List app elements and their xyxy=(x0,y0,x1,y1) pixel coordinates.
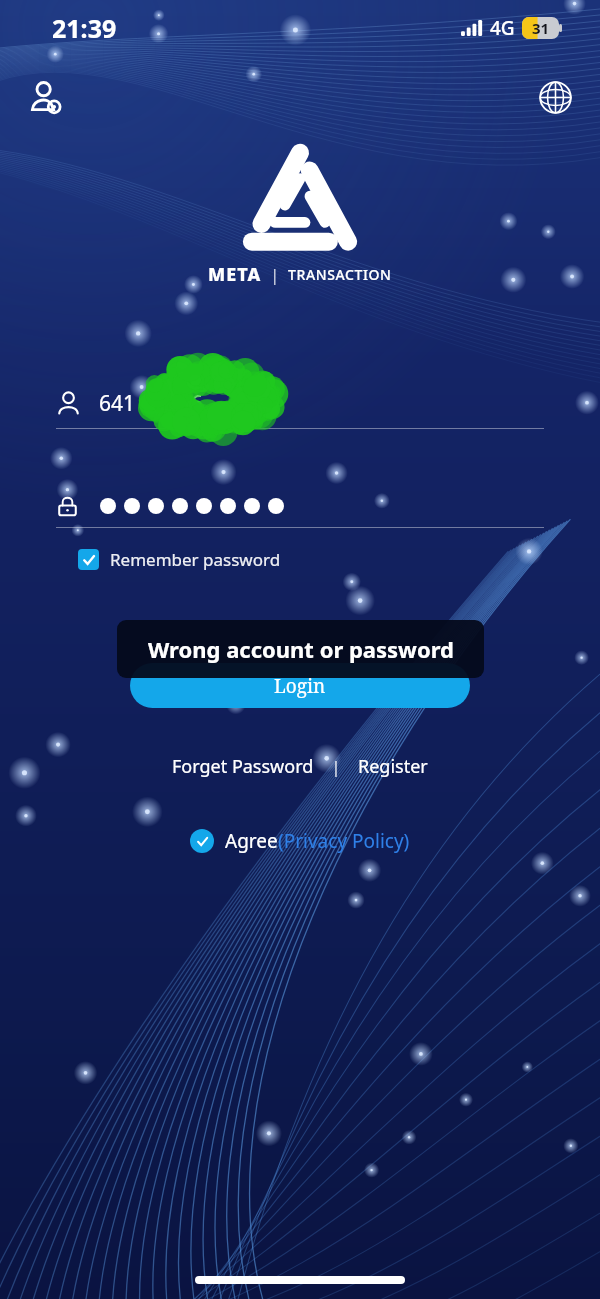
staticText: TRANSACTION xyxy=(288,265,392,284)
button[interactable]: Register xyxy=(354,748,432,785)
staticText: Agree xyxy=(225,828,278,854)
button[interactable]: Forget Password xyxy=(168,748,318,785)
staticText: | xyxy=(262,264,288,286)
button[interactable]: 641 66 xyxy=(56,378,544,428)
staticText: 641 66 xyxy=(99,389,203,418)
staticText: 21:39 xyxy=(52,11,117,45)
button[interactable]: Language xyxy=(530,72,580,122)
staticText: Register xyxy=(358,754,428,779)
button[interactable] xyxy=(56,485,544,527)
staticText: (Privacy Policy) xyxy=(278,828,410,854)
staticText: 4G xyxy=(490,15,515,41)
button[interactable]: Agree xyxy=(186,824,414,858)
staticText: Remember password xyxy=(110,548,281,571)
staticText: META xyxy=(208,262,262,287)
button[interactable]: Account settings xyxy=(20,72,70,122)
staticText: Login xyxy=(274,673,326,699)
staticText: 31 xyxy=(532,18,550,38)
button[interactable]: Remember password xyxy=(78,548,281,571)
staticText: Forget Password xyxy=(172,754,314,779)
button[interactable]: Login xyxy=(130,663,470,708)
staticText: | xyxy=(318,755,354,778)
staticText: Wrong account or password xyxy=(148,634,454,664)
